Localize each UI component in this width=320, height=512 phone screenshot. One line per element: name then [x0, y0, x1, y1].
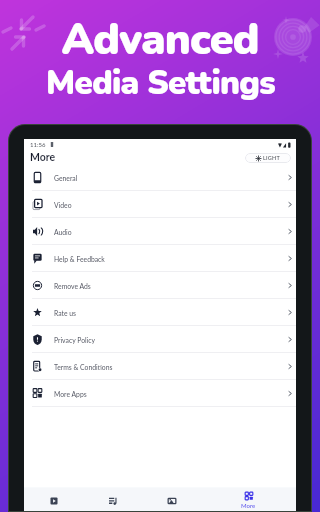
staticText: Remove Ads	[54, 282, 91, 290]
button[interactable]: Terms & Conditions	[24, 353, 296, 380]
staticText: LIGHT	[263, 155, 280, 162]
button[interactable]: Gallery	[142, 488, 201, 511]
staticText: Audio	[54, 228, 72, 236]
staticText: More	[241, 502, 256, 509]
button[interactable]: General	[24, 164, 296, 191]
staticText: Terms & Conditions	[54, 363, 113, 371]
button[interactable]: Audio	[24, 218, 296, 245]
button[interactable]: Video	[24, 191, 296, 218]
staticText: Media Settings	[46, 61, 275, 106]
button[interactable]: Player	[24, 488, 83, 511]
staticText: 11:56	[30, 141, 46, 148]
staticText: Rate us	[54, 309, 77, 317]
button[interactable]: Privacy Policy	[24, 326, 296, 353]
staticText: More Apps	[54, 390, 87, 398]
staticText: Video	[54, 201, 72, 209]
button[interactable]: LIGHT	[245, 153, 291, 163]
button[interactable]: Help & Feedback	[24, 245, 296, 272]
staticText: Help & Feedback	[54, 255, 105, 263]
staticText: More	[30, 151, 56, 164]
staticText: General	[54, 174, 78, 182]
staticText: Advanced	[61, 11, 259, 70]
staticText: Privacy Policy	[54, 336, 95, 344]
button[interactable]: Remove Ads	[24, 272, 296, 299]
button[interactable]: More Apps	[24, 380, 296, 407]
button[interactable]: More	[201, 488, 296, 511]
button[interactable]: Rate us	[24, 299, 296, 326]
button[interactable]: Playlist	[83, 488, 142, 511]
